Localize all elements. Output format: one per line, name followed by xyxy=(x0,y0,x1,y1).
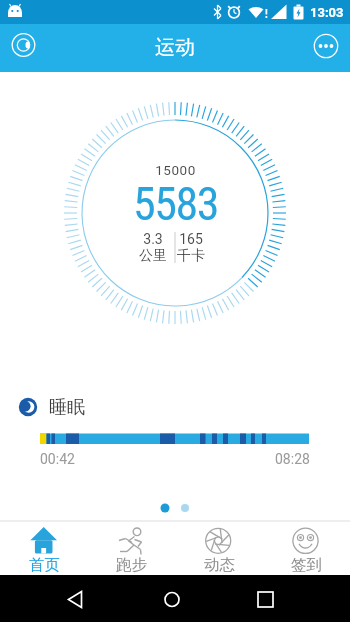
staticText: 动态 xyxy=(204,555,235,575)
staticText: 运动 xyxy=(155,35,195,60)
staticText: 公里 xyxy=(139,247,167,265)
staticText: 千卡 xyxy=(177,247,205,265)
staticText: 00:42 xyxy=(40,451,75,467)
staticText: 15000 xyxy=(155,162,196,178)
staticText: 08:28 xyxy=(275,451,310,467)
staticText: 签到 xyxy=(291,555,322,575)
staticText: 13:03 xyxy=(310,5,344,20)
staticText: 5583 xyxy=(133,177,218,231)
staticText: 165 xyxy=(179,231,203,247)
staticText: 首页 xyxy=(29,555,60,575)
staticText: 睡眠 xyxy=(49,396,85,419)
staticText: 3.3 xyxy=(143,231,163,247)
staticText: 跑步 xyxy=(116,555,147,575)
